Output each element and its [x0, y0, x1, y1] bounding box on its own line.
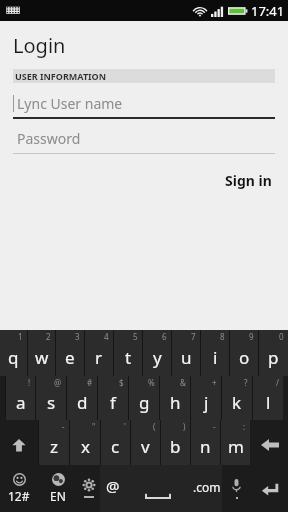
button[interactable]: 4: [85, 330, 113, 376]
staticText: Lync User name: [17, 94, 123, 113]
staticText: x: [81, 435, 90, 458]
button[interactable]: !: [6, 376, 35, 420]
staticText: USER INFORMATION: [15, 70, 107, 82]
staticText: 2: [46, 331, 51, 342]
staticText: m: [228, 435, 244, 458]
button[interactable]: (: [131, 420, 160, 465]
staticText: 8: [220, 331, 225, 342]
staticText: h: [170, 391, 181, 414]
button[interactable]: 1: [0, 330, 27, 376]
staticText: y: [153, 346, 162, 369]
staticText: i: [213, 346, 218, 369]
button[interactable]: Space: [126, 465, 190, 512]
button[interactable]: Settings: [78, 465, 100, 512]
button[interactable]: #: [67, 376, 97, 420]
button[interactable]: @: [36, 376, 66, 420]
button[interactable]: $: [98, 376, 128, 420]
button[interactable]: :: [221, 420, 250, 465]
staticText: 9: [249, 331, 254, 342]
button[interactable]: Language: [39, 465, 77, 512]
staticText: e: [65, 346, 75, 369]
button[interactable]: 7: [172, 330, 200, 376]
button[interactable]: Symbols: [0, 465, 38, 512]
button[interactable]: 3: [56, 330, 84, 376]
staticText: 5: [133, 331, 138, 342]
staticText: n: [200, 435, 211, 458]
staticText: g: [139, 391, 150, 414]
staticText: w: [35, 346, 49, 369]
staticText: v: [141, 435, 150, 458]
staticText: /: [276, 377, 279, 388]
staticText: 6: [162, 331, 167, 342]
staticText: EN: [50, 488, 66, 504]
button[interactable]: 9: [230, 330, 258, 376]
button[interactable]: 2: [28, 330, 55, 376]
staticText: o: [239, 346, 250, 369]
staticText: !: [28, 377, 31, 388]
staticText: @: [106, 476, 120, 496]
staticText: ": [92, 421, 96, 432]
staticText: l: [266, 391, 271, 414]
staticText: j: [204, 391, 209, 414]
button[interactable]: 8: [201, 330, 229, 376]
button[interactable]: %: [129, 376, 159, 420]
staticText: c: [111, 435, 120, 458]
staticText: .com: [193, 479, 221, 495]
button[interactable]: &: [160, 376, 190, 420]
staticText: Sign in: [225, 171, 272, 190]
button[interactable]: Sign in: [209, 166, 288, 195]
staticText: $: [119, 377, 124, 388]
button[interactable]: ?: [222, 376, 252, 420]
staticText: %: [148, 377, 155, 388]
staticText: u: [181, 346, 192, 369]
staticText: 12#: [8, 488, 30, 504]
button[interactable]: -: [191, 420, 220, 465]
staticText: &: [180, 377, 186, 388]
button[interactable]: Shift: [0, 420, 38, 465]
button[interactable]: Lync User name: [13, 92, 275, 119]
button[interactable]: ": [70, 420, 100, 465]
staticText: -: [62, 421, 65, 432]
staticText: :: [243, 421, 246, 432]
button[interactable]: -: [39, 420, 69, 465]
staticText: 3: [75, 331, 80, 342]
button[interactable]: @: [101, 465, 125, 512]
staticText: 4: [104, 331, 109, 342]
button[interactable]: /: [253, 376, 283, 420]
button[interactable]: ': [101, 420, 130, 465]
staticText: ?: [244, 377, 248, 388]
staticText: (: [153, 421, 156, 432]
button[interactable]: .com: [191, 465, 222, 512]
button[interactable]: +: [191, 376, 221, 420]
button[interactable]: Enter: [251, 465, 288, 512]
staticText: #: [87, 377, 93, 388]
staticText: @: [54, 377, 62, 388]
staticText: z: [50, 435, 58, 458]
staticText: k: [232, 391, 242, 414]
button[interactable]: 0: [259, 330, 288, 376]
staticText: p: [268, 346, 279, 369]
button[interactable]: Backspace: [251, 420, 288, 465]
staticText: Password: [17, 129, 81, 148]
button[interactable]: Voice input: [223, 465, 250, 512]
staticText: -: [213, 421, 216, 432]
button[interactable]: Password: [13, 127, 275, 154]
button[interactable]: 6: [143, 330, 171, 376]
staticText: 1: [18, 331, 23, 342]
staticText: f: [110, 391, 116, 414]
button[interactable]: 5: [114, 330, 142, 376]
staticText: q: [8, 346, 19, 369]
staticText: s: [47, 391, 56, 414]
staticText: t: [125, 346, 132, 369]
staticText: a: [16, 391, 26, 414]
staticText: ): [183, 421, 186, 432]
button[interactable]: ): [161, 420, 190, 465]
staticText: +: [212, 377, 217, 388]
staticText: r: [95, 346, 103, 369]
staticText: 7: [191, 331, 196, 342]
staticText: b: [170, 435, 181, 458]
staticText: 17:41: [251, 2, 285, 20]
staticText: Login: [13, 32, 66, 59]
